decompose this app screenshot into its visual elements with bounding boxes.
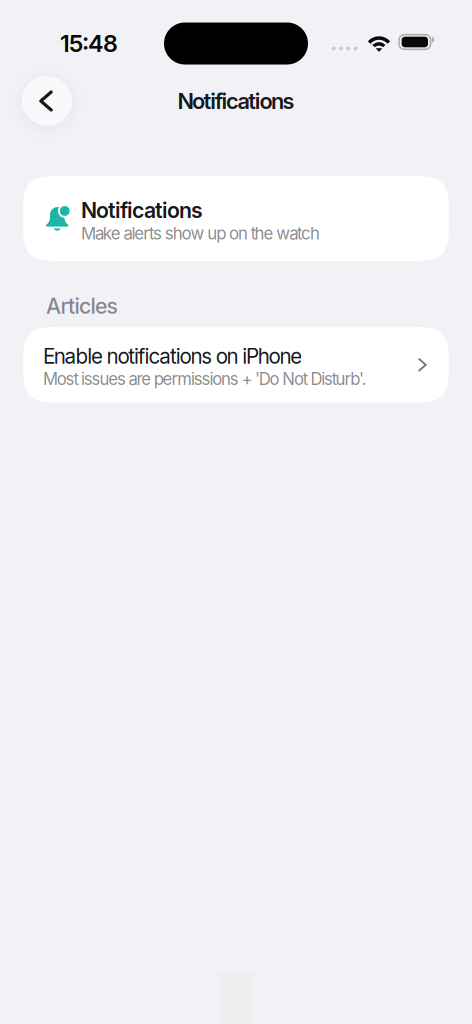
button[interactable]: Back	[22, 76, 72, 126]
staticText: Make alerts show up on the watch	[81, 223, 320, 243]
staticText: Most issues are permissions + 'Do Not Di…	[43, 369, 367, 389]
staticText: Notifications	[177, 88, 295, 114]
staticText: Notifications	[81, 197, 203, 223]
button[interactable]: Notifications	[23, 176, 449, 261]
staticText: Articles	[46, 293, 117, 319]
button[interactable]: Enable notifications on iPhone	[23, 327, 449, 403]
staticText: Enable notifications on iPhone	[43, 344, 302, 369]
staticText: 15:48	[60, 29, 118, 58]
